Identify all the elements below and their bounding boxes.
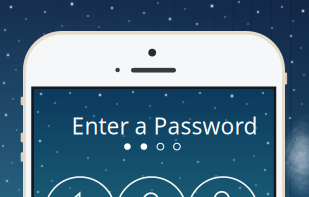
button[interactable]: 2 <box>116 177 186 197</box>
staticText: Enter a Password <box>71 110 257 141</box>
button[interactable]: Volume up <box>21 133 26 142</box>
button[interactable]: Side button <box>282 72 287 84</box>
button[interactable]: 3 <box>188 177 258 197</box>
button[interactable]: Ring/Silent switch <box>21 97 26 105</box>
button[interactable]: 1 <box>45 177 115 197</box>
button[interactable]: Volume down <box>21 152 26 162</box>
